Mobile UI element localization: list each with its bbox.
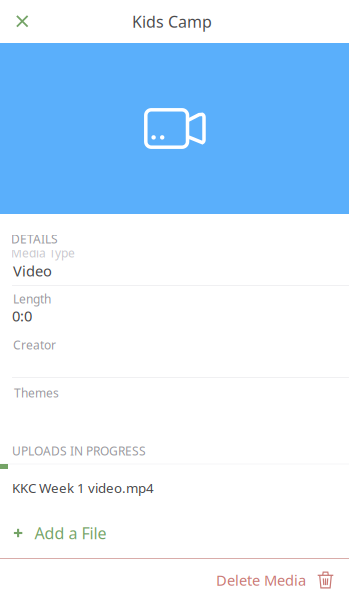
staticText: KKC Week 1 video.mp4 [12, 479, 154, 497]
staticText: Kids Camp [132, 11, 212, 32]
staticText: Video [13, 261, 52, 280]
button[interactable]: Delete Media [0, 559, 349, 601]
staticText: Media Type [11, 245, 75, 261]
button[interactable]: Close [0, 0, 43, 43]
staticText: Delete Media [216, 570, 306, 590]
staticText: Themes [14, 385, 59, 401]
staticText: UPLOADS IN PROGRESS [12, 443, 146, 459]
button[interactable]: Add a File [13, 518, 223, 548]
staticText: Creator [13, 337, 56, 353]
staticText: Add a File [34, 522, 106, 544]
staticText: Length [13, 291, 51, 307]
staticText: 0:0 [12, 306, 32, 325]
staticText: DETAILS [11, 231, 58, 247]
